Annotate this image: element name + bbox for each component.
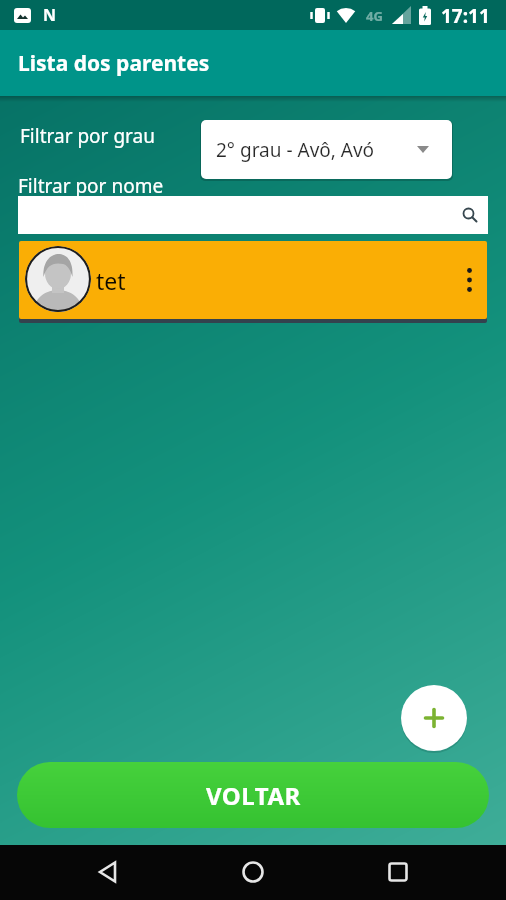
button[interactable]	[388, 862, 408, 882]
staticText: VOLTAR	[206, 779, 301, 812]
button[interactable]: 2° grau - Avô, Avó	[201, 120, 452, 179]
staticText: 17:11	[441, 3, 490, 29]
staticText: Filtrar por nome	[18, 173, 164, 199]
button[interactable]	[242, 861, 264, 883]
button[interactable]	[97, 861, 119, 883]
staticText: tet	[96, 265, 126, 296]
button[interactable]	[401, 685, 467, 751]
button[interactable]: VOLTAR	[17, 762, 489, 828]
staticText: Lista dos parentes	[18, 49, 210, 78]
button[interactable]	[467, 268, 472, 292]
staticText: Filtrar por grau	[20, 123, 155, 149]
staticText: N	[43, 4, 57, 26]
staticText: 4G	[366, 7, 383, 25]
staticText: 2° grau - Avô, Avó	[216, 137, 375, 163]
button[interactable]	[18, 196, 488, 234]
button[interactable]: tet	[19, 241, 487, 319]
